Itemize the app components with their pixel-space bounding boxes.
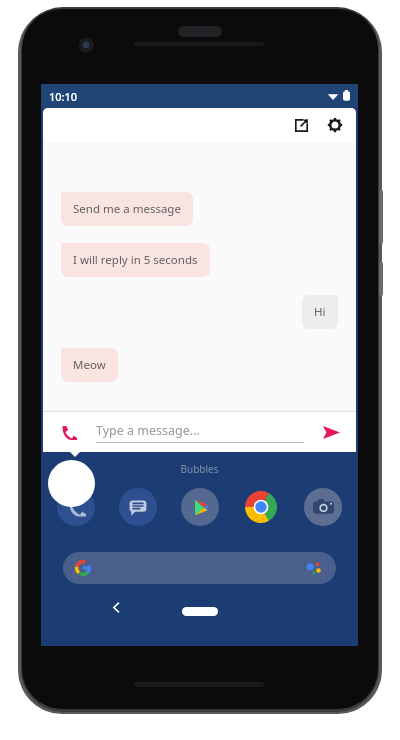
staticText: Hi: [314, 304, 326, 320]
button[interactable]: Open in new: [286, 110, 316, 140]
button[interactable]: Settings: [318, 108, 352, 142]
button[interactable]: Meow: [61, 348, 118, 382]
button[interactable]: Back: [103, 594, 129, 620]
staticText: Send me a message: [73, 201, 181, 217]
button[interactable]: Type a message...: [96, 422, 304, 443]
button[interactable]: Call: [57, 420, 81, 444]
button[interactable]: Home: [182, 607, 218, 616]
button[interactable]: I will reply in 5 seconds: [61, 243, 210, 277]
button[interactable]: Camera: [304, 488, 342, 526]
staticText: Bubbles: [41, 462, 358, 476]
button[interactable]: Messages: [119, 488, 157, 526]
button[interactable]: Send: [318, 419, 344, 445]
staticText: Type a message...: [96, 422, 200, 439]
staticText: I will reply in 5 seconds: [73, 252, 198, 268]
button[interactable]: Send me a message: [61, 192, 193, 226]
button[interactable]: Play Store: [181, 488, 219, 526]
button[interactable]: Search: [63, 552, 336, 584]
staticText: Meow: [73, 357, 106, 373]
staticText: 10:10: [49, 89, 78, 104]
button[interactable]: Chat bubble: [48, 460, 95, 507]
button[interactable]: Hi: [302, 295, 338, 329]
button[interactable]: Phone: [57, 488, 95, 526]
button[interactable]: Chrome: [242, 488, 280, 526]
